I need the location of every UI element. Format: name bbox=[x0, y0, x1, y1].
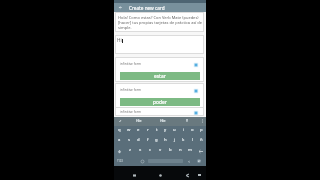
button[interactable]: v bbox=[155, 146, 165, 156]
staticText: Create new card bbox=[129, 5, 165, 11]
staticText: ?123 bbox=[117, 159, 123, 163]
button[interactable]: i bbox=[179, 126, 188, 136]
staticText: s bbox=[128, 137, 131, 143]
staticText: b bbox=[169, 147, 172, 153]
staticText: g bbox=[155, 137, 158, 143]
button[interactable]: Shift bbox=[114, 146, 125, 156]
staticText: n bbox=[179, 147, 182, 153]
staticText: o bbox=[191, 127, 194, 133]
staticText: Hola! Como estas? Con Verb Mate (puedes)… bbox=[118, 15, 203, 30]
button[interactable]: Hi bbox=[115, 35, 204, 54]
staticText: f bbox=[147, 137, 149, 143]
button[interactable]: k bbox=[179, 136, 188, 146]
button[interactable]: y bbox=[161, 126, 170, 136]
button[interactable]: g bbox=[152, 136, 161, 146]
button[interactable]: Enter bbox=[194, 156, 204, 166]
button[interactable]: z bbox=[125, 146, 135, 156]
button[interactable]: r bbox=[143, 126, 152, 136]
staticText: Hie bbox=[160, 118, 166, 123]
button[interactable]: Emoji bbox=[138, 156, 146, 166]
staticText: v bbox=[159, 147, 162, 153]
staticText: x bbox=[139, 147, 142, 153]
button[interactable]: Back bbox=[116, 3, 124, 12]
button[interactable]: Switch keyboard bbox=[195, 171, 203, 179]
button[interactable]: h bbox=[161, 136, 170, 146]
button[interactable]: ñ bbox=[197, 136, 206, 146]
button[interactable]: p bbox=[197, 126, 206, 136]
button[interactable]: w bbox=[124, 126, 134, 136]
staticText: Hi bbox=[117, 37, 122, 43]
button[interactable]: estar bbox=[120, 72, 200, 80]
button[interactable]: infinitive form bbox=[115, 107, 204, 116]
button[interactable]: s bbox=[124, 136, 134, 146]
button[interactable]: More options bbox=[199, 117, 206, 126]
button[interactable]: poder bbox=[120, 98, 200, 106]
button[interactable]: q bbox=[114, 126, 124, 136]
button[interactable]: f bbox=[143, 136, 152, 146]
staticText: Hie bbox=[136, 118, 142, 123]
staticText: estar bbox=[154, 73, 166, 80]
button[interactable]: d bbox=[134, 136, 143, 146]
staticText: a bbox=[118, 137, 121, 143]
button[interactable]: x bbox=[135, 146, 145, 156]
staticText: d bbox=[137, 137, 140, 143]
staticText: k bbox=[182, 137, 185, 143]
staticText: e bbox=[137, 127, 140, 133]
button[interactable]: t bbox=[152, 126, 161, 136]
button[interactable]: b bbox=[165, 146, 175, 156]
button[interactable]: infinitive form bbox=[115, 83, 204, 97]
staticText: Y bbox=[186, 118, 188, 123]
staticText: p bbox=[200, 127, 203, 133]
staticText: y bbox=[164, 127, 167, 133]
staticText: w bbox=[127, 127, 131, 133]
staticText: infinitive form bbox=[120, 110, 142, 114]
button[interactable]: o bbox=[188, 126, 197, 136]
button[interactable]: < bbox=[185, 156, 193, 166]
staticText: ✓ bbox=[119, 119, 122, 123]
button[interactable]: Backspace bbox=[195, 146, 206, 156]
button[interactable]: l bbox=[188, 136, 197, 146]
button[interactable]: a bbox=[114, 136, 124, 146]
staticText: ⋮ bbox=[201, 119, 205, 123]
staticText: ñ bbox=[200, 137, 203, 143]
staticText: t bbox=[156, 127, 158, 133]
staticText: z bbox=[129, 147, 131, 153]
staticText: u bbox=[173, 127, 176, 133]
button[interactable]: u bbox=[170, 126, 179, 136]
button[interactable]: Home bbox=[156, 171, 164, 179]
staticText: m bbox=[188, 147, 192, 153]
staticText: c bbox=[149, 147, 152, 153]
button[interactable]: n bbox=[175, 146, 185, 156]
staticText: poder bbox=[153, 99, 167, 106]
button[interactable]: infinitive form bbox=[115, 57, 204, 71]
button[interactable]: Back bbox=[183, 171, 191, 179]
button[interactable]: Recents bbox=[130, 171, 138, 179]
button[interactable]: j bbox=[170, 136, 179, 146]
staticText: i bbox=[183, 127, 185, 133]
staticText: q bbox=[118, 127, 121, 133]
button[interactable]: m bbox=[185, 146, 195, 156]
button[interactable]: ?123 bbox=[115, 156, 124, 166]
staticText: < bbox=[188, 159, 190, 164]
button[interactable]: e bbox=[134, 126, 143, 136]
button[interactable]: c bbox=[145, 146, 155, 156]
staticText: infinitive form bbox=[120, 88, 142, 92]
staticText: r bbox=[147, 127, 149, 133]
button[interactable]: Voice input bbox=[114, 117, 127, 126]
staticText: infinitive form bbox=[120, 62, 142, 66]
staticText: j bbox=[174, 137, 176, 143]
staticText: l bbox=[192, 137, 194, 143]
staticText: h bbox=[164, 137, 167, 143]
